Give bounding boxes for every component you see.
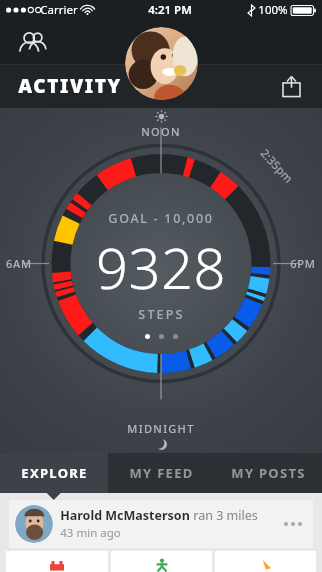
staticText: ran 3 miles bbox=[193, 507, 258, 524]
staticText: Carrier bbox=[40, 2, 78, 18]
staticText: NOON bbox=[141, 124, 181, 139]
staticText: 100% bbox=[258, 2, 288, 18]
staticText: GOAL - 10,000 bbox=[108, 210, 214, 227]
button[interactable]: More options bbox=[277, 508, 309, 540]
button[interactable]: Activity type 0 bbox=[6, 551, 108, 572]
button[interactable]: Friends bbox=[14, 22, 54, 62]
button[interactable]: Share bbox=[272, 67, 310, 105]
staticText: 4:21 PM bbox=[148, 2, 192, 18]
staticText: ACTIVITY bbox=[18, 73, 122, 99]
button[interactable]: MY POSTS bbox=[215, 453, 322, 493]
staticText: MIDNIGHT bbox=[127, 421, 195, 436]
staticText: EXPLORE bbox=[21, 464, 88, 482]
staticText: Harold McMasterson bbox=[60, 507, 190, 524]
staticText: STEPS bbox=[138, 306, 185, 323]
staticText: 6AM bbox=[6, 256, 32, 271]
staticText: 2:35pm bbox=[257, 146, 296, 186]
button[interactable]: MY FEED bbox=[108, 453, 215, 493]
staticText: 6PM bbox=[290, 256, 316, 271]
button[interactable]: Harold McMasterson bbox=[9, 500, 313, 548]
button[interactable]: EXPLORE bbox=[0, 453, 108, 493]
staticText: MY POSTS bbox=[231, 464, 306, 482]
staticText: MY FEED bbox=[129, 464, 194, 482]
button[interactable]: Activity type 1 bbox=[111, 551, 212, 572]
button[interactable]: Profile photo bbox=[125, 27, 198, 100]
button[interactable]: Activity type 2 bbox=[215, 551, 316, 572]
staticText: 43 min ago bbox=[60, 525, 121, 541]
staticText: 9328 bbox=[96, 229, 226, 305]
